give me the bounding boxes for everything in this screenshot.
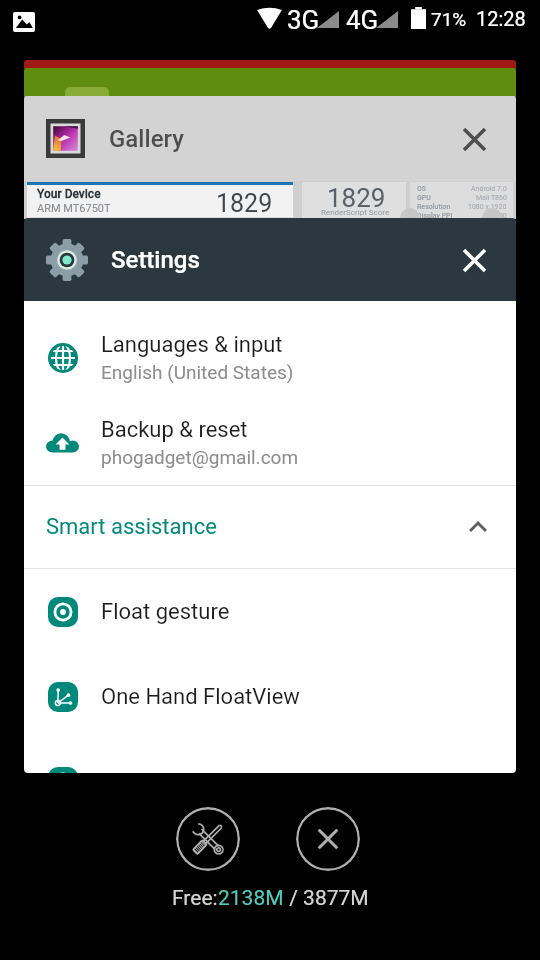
staticText: Mali T860 — [476, 194, 507, 202]
staticText: Backup & reset — [101, 417, 248, 443]
staticText: Gallery — [109, 125, 184, 153]
button[interactable]: One Hand FloatView — [24, 654, 516, 739]
staticText: 400 — [495, 212, 507, 219]
button[interactable]: Float gesture — [24, 569, 516, 654]
staticText: 1829 — [216, 189, 273, 218]
button[interactable]: Close Settings — [445, 231, 503, 289]
staticText: 12:28 — [476, 7, 526, 30]
staticText: Your Device — [37, 187, 101, 201]
staticText: RenderScript Score — [321, 208, 390, 217]
staticText: Settings — [111, 246, 200, 274]
button[interactable]: Gallery — [24, 96, 516, 181]
button[interactable]: Settings — [24, 218, 516, 301]
staticText: 2138M — [218, 886, 284, 911]
staticText: Android 7.0 — [471, 185, 507, 193]
button[interactable]: Close all apps — [296, 807, 360, 871]
staticText: / 3877M — [284, 886, 369, 911]
staticText: 3G — [287, 5, 320, 35]
staticText: 4G — [346, 5, 379, 35]
staticText: GPU — [417, 194, 431, 202]
staticText: 71% — [431, 8, 467, 30]
button[interactable]: Smart assistance — [24, 486, 516, 568]
staticText: OS — [417, 185, 427, 193]
button[interactable]: Close Gallery — [445, 110, 503, 168]
staticText: Display PPI — [417, 212, 453, 219]
staticText: 1829 — [327, 183, 386, 213]
staticText: Resolution — [417, 203, 451, 211]
button[interactable]: Backup & reset — [24, 406, 516, 491]
staticText: One Hand FloatView — [101, 684, 300, 710]
staticText: Free: — [172, 886, 218, 911]
staticText: Languages & input — [101, 332, 283, 358]
staticText: Float gesture — [101, 599, 230, 625]
button[interactable]: Collapse Smart assistance — [455, 504, 501, 550]
staticText: ARM MT6750T — [37, 202, 111, 215]
staticText: Smart assistance — [46, 514, 217, 540]
staticText: 1080 x 1920 — [468, 203, 507, 211]
button[interactable]: Clean memory — [176, 807, 240, 871]
staticText: phogadget@gmail.com — [101, 446, 299, 468]
staticText: English (United States) — [101, 361, 294, 383]
button[interactable]: Languages & input — [24, 321, 516, 406]
